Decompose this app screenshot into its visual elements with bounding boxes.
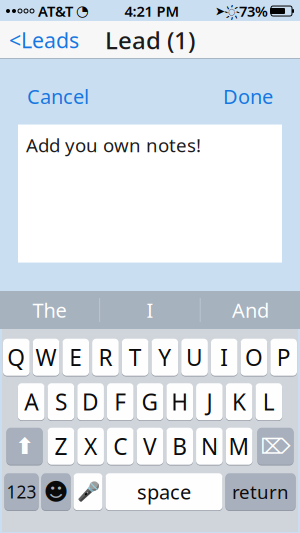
staticText: N bbox=[201, 431, 218, 461]
button[interactable]: And bbox=[201, 291, 300, 329]
staticText: U bbox=[186, 342, 203, 372]
staticText: V bbox=[143, 431, 157, 461]
button[interactable]: V bbox=[137, 427, 163, 465]
staticText: 🎤 bbox=[76, 481, 99, 502]
staticText: And bbox=[232, 297, 269, 323]
staticText: J bbox=[206, 387, 212, 417]
staticText: AT&T bbox=[38, 1, 73, 21]
button[interactable]: L bbox=[255, 382, 282, 421]
button[interactable]: Done bbox=[213, 77, 283, 116]
button[interactable]: Delete bbox=[257, 427, 293, 465]
staticText: M bbox=[229, 431, 250, 461]
button[interactable]: S bbox=[48, 382, 74, 421]
staticText: Z bbox=[54, 431, 67, 461]
button[interactable]: K bbox=[226, 382, 252, 421]
staticText: H bbox=[171, 387, 188, 417]
staticText: C bbox=[113, 431, 127, 461]
staticText: ➤ bbox=[215, 4, 225, 18]
staticText: return bbox=[232, 479, 289, 504]
staticText: X bbox=[84, 431, 97, 461]
staticText: F bbox=[114, 387, 126, 417]
staticText: B bbox=[172, 431, 187, 461]
button[interactable]: Emoji bbox=[41, 472, 70, 511]
button[interactable]: H bbox=[166, 382, 193, 421]
staticText: O bbox=[245, 342, 263, 372]
button[interactable]: R bbox=[92, 338, 119, 376]
button[interactable]: return bbox=[225, 472, 295, 511]
staticText: G bbox=[141, 387, 158, 417]
staticText: Cancel bbox=[27, 83, 89, 110]
button[interactable]: A bbox=[18, 382, 45, 421]
staticText: T bbox=[129, 342, 142, 372]
staticText: R bbox=[98, 342, 112, 372]
button[interactable]: Y bbox=[151, 338, 178, 376]
staticText: 4:21 PM bbox=[124, 1, 179, 21]
button[interactable]: G bbox=[137, 382, 163, 421]
button[interactable]: F bbox=[107, 382, 134, 421]
button[interactable]: E bbox=[62, 338, 89, 376]
staticText: Add you own notes! bbox=[26, 133, 201, 157]
button[interactable]: Z bbox=[48, 427, 74, 465]
button[interactable]: Dictate bbox=[73, 472, 102, 511]
staticText: S bbox=[55, 387, 67, 417]
staticText: 123 bbox=[6, 480, 36, 503]
button[interactable]: I bbox=[211, 338, 238, 376]
staticText: ☻ bbox=[43, 478, 68, 505]
staticText: L bbox=[263, 387, 275, 417]
button[interactable]: P bbox=[270, 338, 297, 376]
button[interactable]: <Leads bbox=[0, 21, 88, 59]
button[interactable]: B bbox=[166, 427, 193, 465]
button[interactable]: N bbox=[196, 427, 223, 465]
staticText: D bbox=[82, 387, 99, 417]
button[interactable]: U bbox=[181, 338, 208, 376]
button[interactable]: O bbox=[241, 338, 267, 376]
staticText: K bbox=[232, 387, 246, 417]
button[interactable]: M bbox=[226, 427, 252, 465]
button[interactable]: Q bbox=[3, 338, 30, 376]
staticText: E bbox=[69, 342, 82, 372]
staticText: I bbox=[220, 342, 228, 372]
staticText: ҉ bbox=[228, 2, 236, 20]
button[interactable]: Add you own notes! bbox=[18, 125, 282, 263]
staticText: Lead (1) bbox=[105, 24, 195, 56]
button[interactable]: J bbox=[196, 382, 223, 421]
staticText: 73% bbox=[239, 1, 268, 21]
staticText: The bbox=[32, 297, 66, 323]
staticText: <Leads bbox=[9, 26, 79, 54]
staticText: P bbox=[277, 342, 291, 372]
button[interactable]: W bbox=[33, 338, 59, 376]
button[interactable]: C bbox=[107, 427, 134, 465]
staticText: Done bbox=[223, 83, 273, 110]
staticText: ⌦ bbox=[260, 434, 290, 458]
staticText: ⬆ bbox=[15, 433, 34, 459]
staticText: Y bbox=[158, 342, 171, 372]
staticText: I bbox=[146, 297, 153, 323]
staticText: ◔ bbox=[76, 3, 89, 19]
button[interactable]: The bbox=[0, 291, 99, 329]
staticText: Q bbox=[7, 342, 25, 372]
button[interactable]: I bbox=[100, 291, 200, 329]
button[interactable]: Shift bbox=[7, 427, 43, 465]
button[interactable]: T bbox=[122, 338, 148, 376]
button[interactable]: space bbox=[105, 472, 222, 511]
button[interactable]: X bbox=[77, 427, 104, 465]
staticText: W bbox=[36, 342, 57, 372]
staticText: A bbox=[24, 387, 38, 417]
button[interactable]: Cancel bbox=[17, 77, 99, 116]
staticText: space bbox=[137, 478, 191, 505]
button[interactable]: 123 bbox=[4, 472, 38, 511]
button[interactable]: D bbox=[77, 382, 104, 421]
